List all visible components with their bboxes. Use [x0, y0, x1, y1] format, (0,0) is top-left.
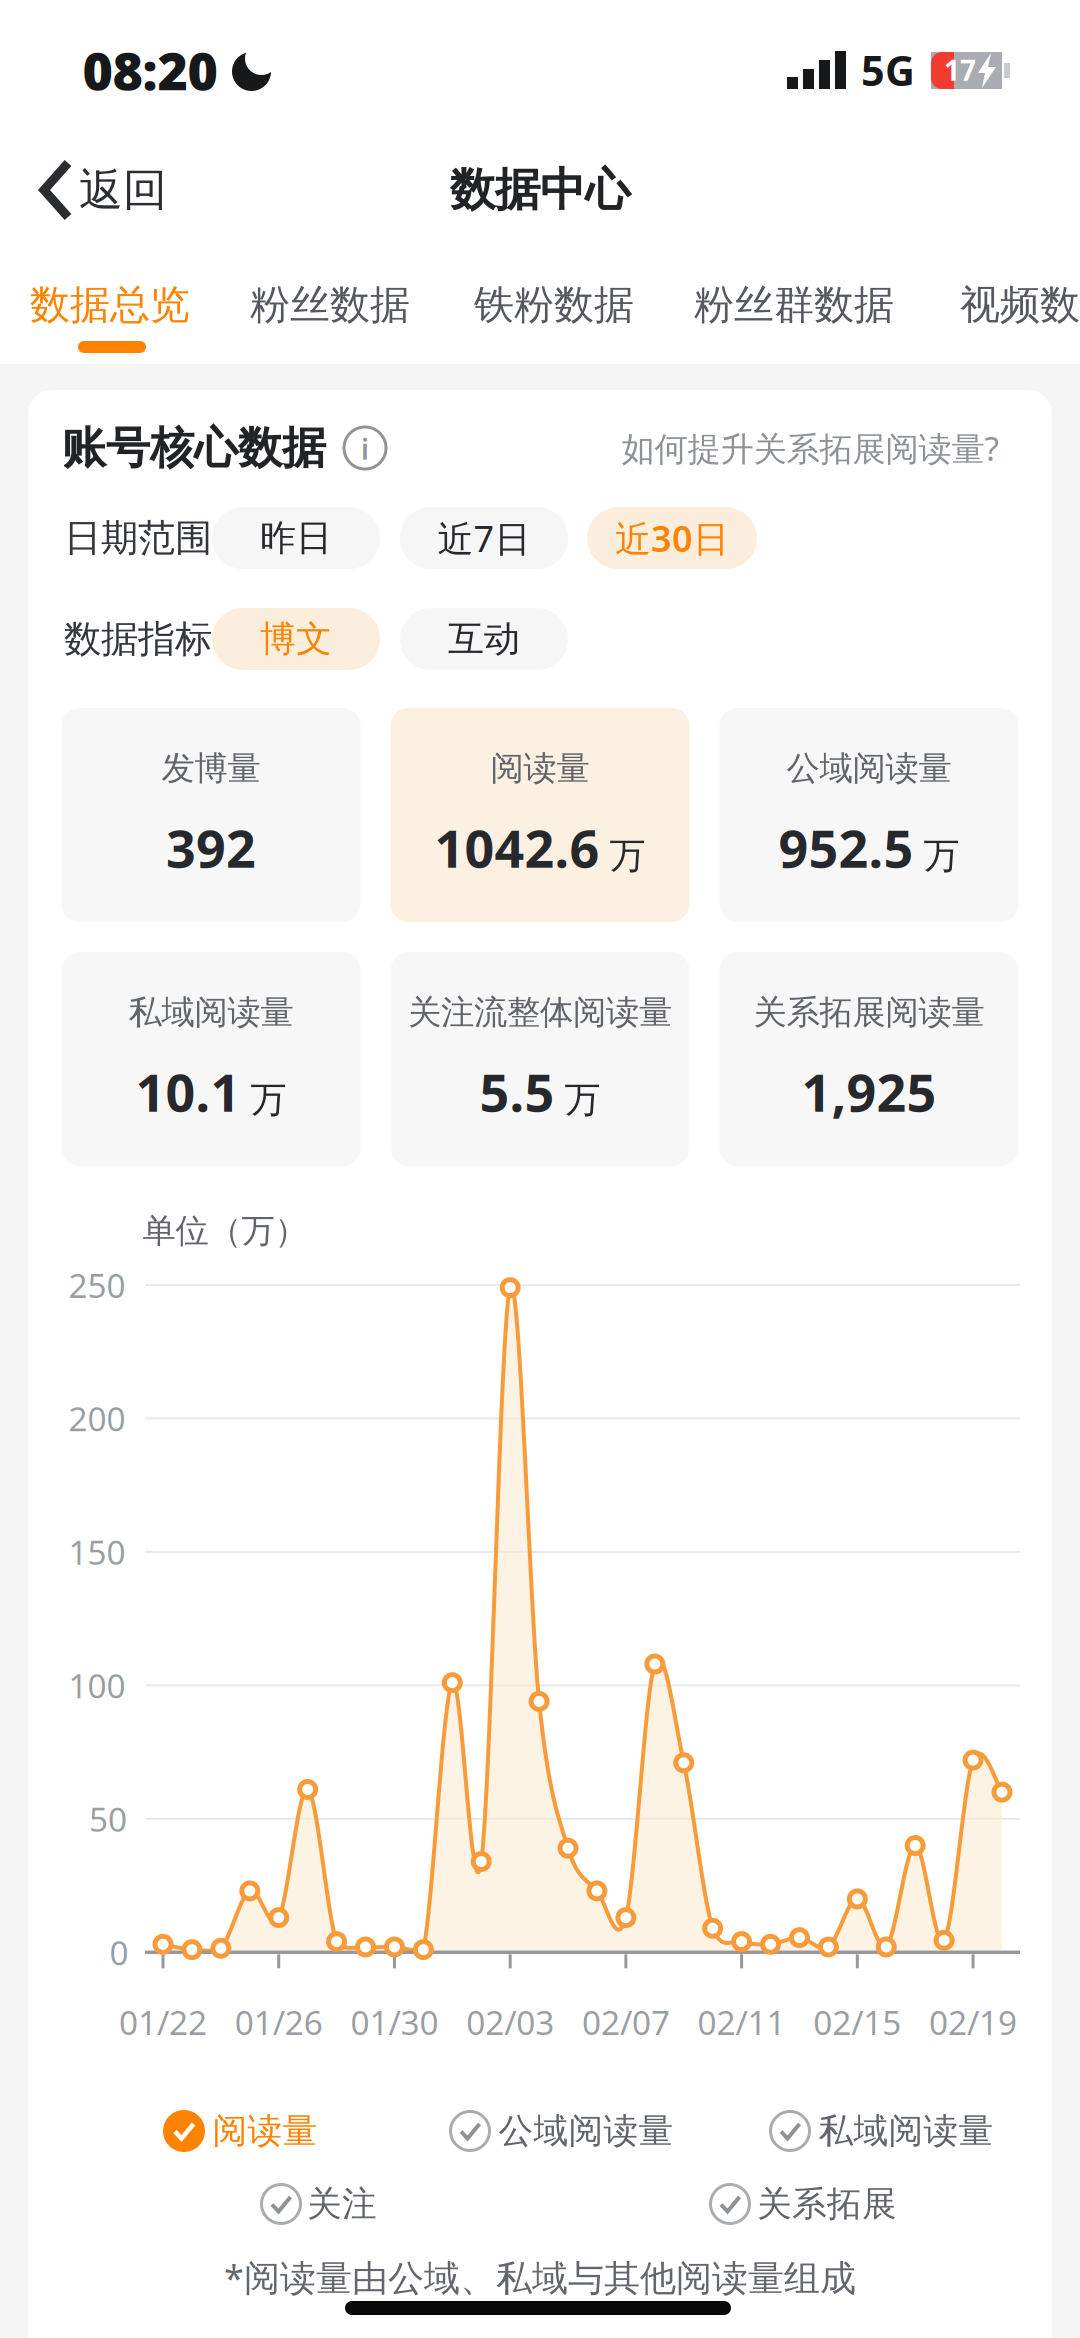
staticText: 单位（万） [142, 1210, 307, 1251]
staticText: 100 [68, 1663, 125, 1707]
staticText: 02/03 [466, 2000, 554, 2044]
staticText: 数据中心 [450, 162, 630, 218]
staticText: 1042.6 [434, 813, 599, 882]
staticText: *阅读量由公域、私域与其他阅读量组成 [224, 2253, 856, 2301]
staticText: 万 [250, 1077, 286, 1122]
staticText: 17 [944, 51, 976, 89]
staticText: 关系拓展阅读量 [753, 992, 984, 1033]
staticText: 952.5 [778, 813, 913, 882]
staticText: 关注流整体阅读量 [408, 992, 672, 1033]
staticText: i [361, 430, 369, 468]
staticText: 数据指标 [64, 616, 212, 662]
staticText: 日期范围 [64, 515, 212, 561]
staticText: 01/22 [119, 2000, 207, 2044]
staticText: 铁粉数据 [474, 280, 634, 329]
staticText: 互动 [448, 617, 520, 661]
staticText: 关注 [307, 2183, 377, 2225]
staticText: 公域阅读量 [786, 748, 951, 789]
staticText: 发博量 [161, 748, 260, 789]
staticText: 02/11 [698, 2000, 786, 2044]
staticText: 01/26 [235, 2000, 323, 2044]
staticText: 博文 [260, 617, 332, 661]
staticText: 150 [68, 1530, 125, 1574]
staticText: 视频数据 [960, 280, 1080, 329]
staticText: 50 [89, 1797, 127, 1841]
staticText: 万 [923, 833, 959, 878]
staticText: 关系拓展 [757, 2183, 897, 2225]
staticText: 昨日 [260, 516, 332, 560]
staticText: 粉丝群数据 [694, 280, 894, 329]
staticText: 02/07 [582, 2000, 670, 2044]
staticText: 万 [564, 1077, 600, 1122]
staticText: 账号核心数据 [62, 421, 326, 475]
staticText: 200 [68, 1396, 125, 1441]
staticText: 02/19 [929, 2000, 1017, 2044]
staticText: 08:20 [82, 35, 217, 105]
staticText: 私域阅读量 [818, 2110, 993, 2152]
staticText: 0 [109, 1930, 128, 1974]
staticText: 私域阅读量 [128, 992, 293, 1033]
staticText: 粉丝数据 [250, 280, 410, 329]
staticText: 1,925 [801, 1057, 936, 1126]
staticText: 5.5 [479, 1057, 554, 1126]
staticText: 数据总览 [30, 280, 190, 329]
staticText: 250 [68, 1263, 125, 1307]
staticText: 02/15 [813, 2000, 901, 2044]
staticText: 阅读量 [212, 2110, 317, 2152]
staticText: 392 [166, 813, 256, 882]
staticText: 10.1 [135, 1057, 240, 1126]
staticText: 近30日 [615, 514, 729, 562]
staticText: 5G [861, 43, 915, 97]
staticText: 阅读量 [490, 748, 589, 789]
staticText: 近7日 [437, 514, 530, 562]
staticText: 公域阅读量 [498, 2110, 673, 2152]
staticText: 万 [609, 833, 645, 878]
staticText: 如何提升关系拓展阅读量? [621, 426, 998, 470]
staticText: 返回 [79, 163, 167, 217]
staticText: 01/30 [350, 2000, 438, 2044]
